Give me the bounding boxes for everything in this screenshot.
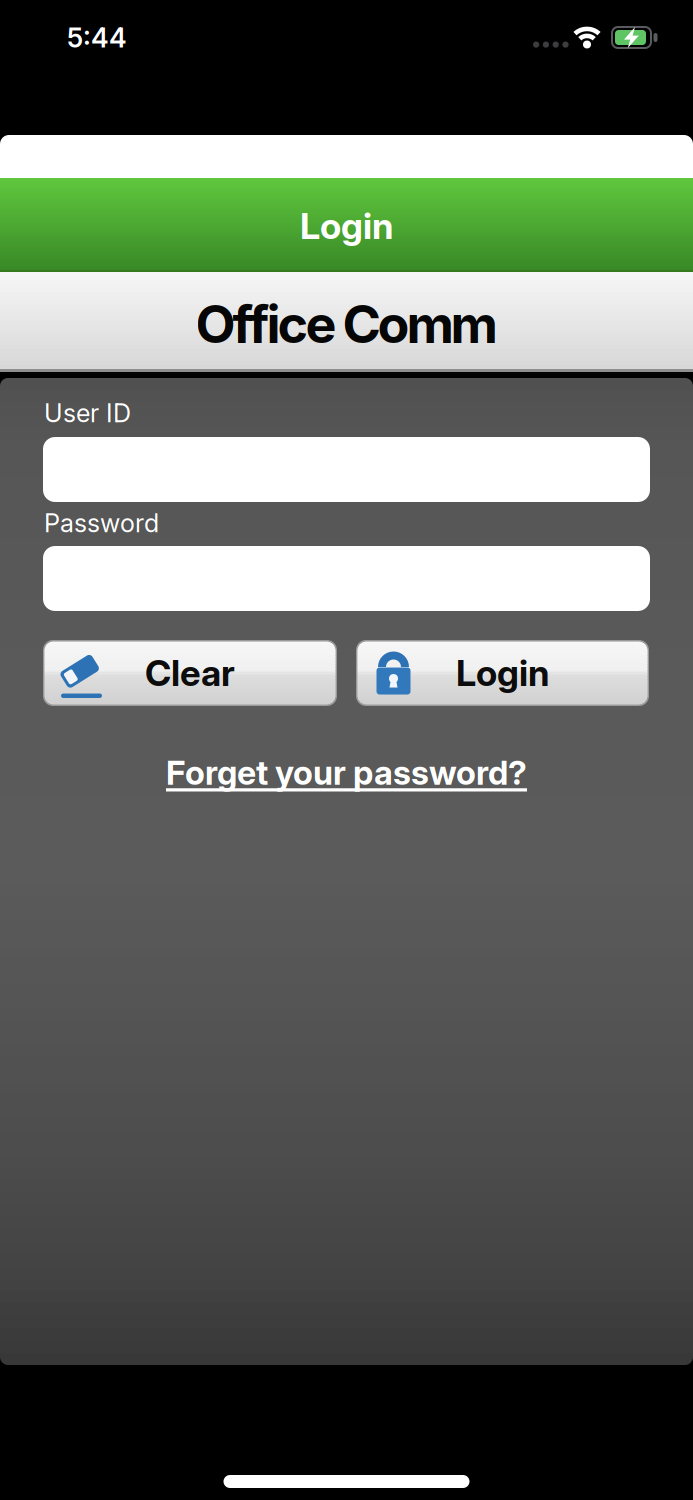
button[interactable]: Login	[356, 640, 649, 706]
staticText: User ID	[44, 398, 131, 428]
staticText: Clear	[145, 652, 235, 694]
staticText: Office Comm	[195, 293, 497, 355]
staticText: Password	[44, 508, 159, 538]
staticText: Login	[300, 205, 393, 247]
staticText: 5:44	[67, 22, 127, 53]
button[interactable]: Password	[43, 546, 650, 611]
staticText: Login	[456, 652, 549, 694]
button[interactable]: User ID	[43, 437, 650, 502]
staticText: Forget your password?	[166, 753, 527, 792]
button[interactable]: Home	[223, 1475, 469, 1488]
button[interactable]: Clear	[43, 640, 337, 706]
button[interactable]: Forget your password?	[166, 753, 527, 792]
